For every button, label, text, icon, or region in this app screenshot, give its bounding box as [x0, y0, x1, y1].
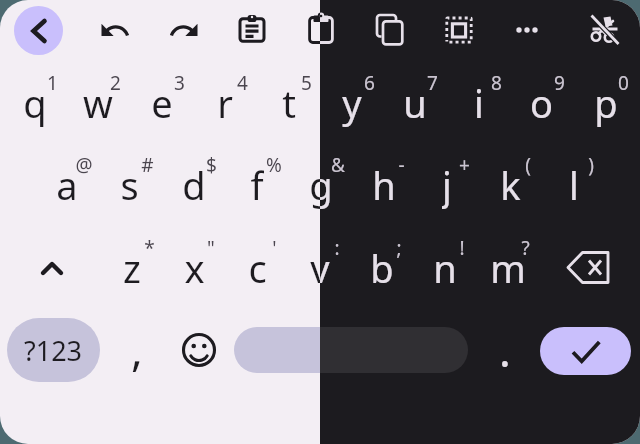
- staticText: 0: [618, 70, 629, 94]
- button[interactable]: m: [477, 221, 539, 303]
- staticText: %: [266, 152, 282, 176]
- button[interactable]: .: [478, 321, 526, 381]
- staticText: a: [56, 159, 78, 209]
- button[interactable]: d: [162, 138, 225, 220]
- button[interactable]: Copy: [365, 7, 413, 55]
- staticText: o: [530, 77, 553, 127]
- staticText: 0: [618, 70, 629, 94]
- staticText: 7: [427, 70, 438, 94]
- button[interactable]: x: [163, 221, 225, 303]
- button[interactable]: Select all: [435, 6, 483, 54]
- staticText: ?: [521, 235, 530, 259]
- button[interactable]: Undo: [91, 6, 139, 54]
- staticText: f: [250, 159, 264, 209]
- button[interactable]: i: [447, 56, 510, 138]
- button[interactable]: ?123: [7, 318, 100, 382]
- staticText: j: [442, 159, 452, 209]
- button[interactable]: l: [542, 138, 605, 220]
- staticText: :: [334, 235, 340, 259]
- button[interactable]: Back: [14, 6, 63, 55]
- button[interactable]: f: [225, 138, 288, 220]
- button[interactable]: w: [66, 56, 129, 138]
- staticText: #: [141, 152, 154, 176]
- button[interactable]: Shift: [22, 238, 82, 298]
- button[interactable]: o: [510, 56, 573, 138]
- staticText: a: [56, 159, 78, 209]
- staticText: ,: [131, 319, 143, 379]
- other: Select all: [435, 6, 483, 54]
- staticText: c: [248, 242, 267, 292]
- staticText: ): [588, 152, 594, 176]
- staticText: ": [207, 235, 215, 259]
- staticText: 9: [554, 70, 565, 94]
- staticText: 7: [427, 70, 438, 94]
- button[interactable]: t: [257, 56, 320, 138]
- staticText: 6: [364, 70, 375, 94]
- staticText: +: [459, 152, 470, 176]
- button[interactable]: Disable clipboard: [581, 6, 629, 54]
- staticText: k: [500, 159, 521, 209]
- button[interactable]: Space: [234, 327, 468, 373]
- staticText: +: [459, 152, 470, 176]
- button[interactable]: Backspace: [558, 238, 618, 298]
- other: Shift: [22, 238, 82, 298]
- button[interactable]: Enter: [540, 327, 631, 375]
- button[interactable]: e: [130, 56, 193, 138]
- button[interactable]: More options: [503, 6, 551, 54]
- staticText: 1: [47, 70, 58, 94]
- button[interactable]: a: [35, 138, 98, 220]
- button[interactable]: s: [98, 138, 161, 220]
- staticText: c: [248, 242, 267, 292]
- other: Undo: [91, 6, 139, 54]
- staticText: w: [83, 77, 113, 127]
- staticText: *: [144, 235, 155, 259]
- other: Enter: [540, 327, 631, 375]
- staticText: 4: [237, 70, 248, 94]
- button[interactable]: z: [101, 221, 163, 303]
- button[interactable]: q: [3, 56, 66, 138]
- staticText: $: [206, 152, 217, 176]
- other: Backspace: [558, 238, 618, 298]
- button[interactable]: Redo: [160, 6, 208, 54]
- staticText: x: [184, 242, 205, 292]
- button[interactable]: h: [352, 138, 415, 220]
- button[interactable]: u: [383, 56, 446, 138]
- button[interactable]: v: [289, 221, 351, 303]
- staticText: ": [207, 235, 215, 259]
- button[interactable]: ,: [110, 320, 158, 380]
- staticText: j: [442, 159, 452, 209]
- other: Space: [234, 327, 468, 373]
- staticText: h: [372, 159, 396, 209]
- button[interactable]: Emoji: [175, 326, 223, 374]
- staticText: 2: [110, 70, 121, 94]
- button[interactable]: b: [351, 221, 413, 303]
- button[interactable]: y: [320, 56, 383, 138]
- button[interactable]: g: [289, 138, 352, 220]
- button[interactable]: p: [574, 56, 637, 138]
- staticText: ?123: [24, 332, 83, 369]
- staticText: m: [490, 242, 526, 292]
- button[interactable]: c: [226, 221, 288, 303]
- button[interactable]: n: [414, 221, 476, 303]
- staticText: (: [525, 152, 531, 176]
- staticText: %: [266, 152, 282, 176]
- button[interactable]: j: [415, 138, 478, 220]
- button[interactable]: Paste: [297, 6, 345, 54]
- other: Clipboard: [228, 6, 276, 54]
- other: Back: [14, 6, 63, 55]
- staticText: :: [334, 235, 340, 259]
- button[interactable]: k: [479, 138, 542, 220]
- button[interactable]: Clipboard: [228, 6, 276, 54]
- button[interactable]: r: [193, 56, 256, 138]
- staticText: 8: [491, 70, 502, 94]
- staticText: @: [75, 152, 93, 176]
- staticText: e: [151, 77, 173, 127]
- other: Redo: [160, 6, 208, 54]
- staticText: 1: [47, 70, 58, 94]
- staticText: r: [217, 77, 233, 127]
- staticText: .: [499, 320, 511, 380]
- other: Emoji: [175, 326, 223, 374]
- staticText: n: [433, 242, 457, 292]
- staticText: 4: [237, 70, 248, 94]
- staticText: v: [310, 242, 330, 292]
